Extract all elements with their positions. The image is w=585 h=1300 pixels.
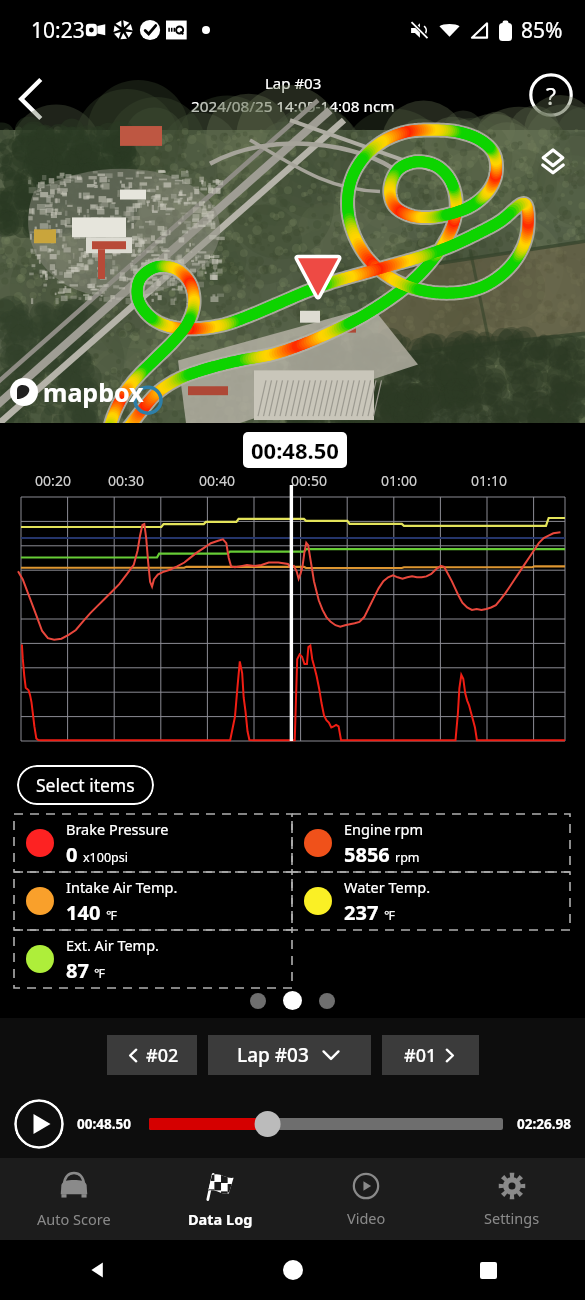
staticText: 237 bbox=[344, 899, 379, 926]
staticText: Water Temp. bbox=[344, 877, 431, 897]
button[interactable]: Settings bbox=[439, 1158, 585, 1240]
staticText: 5856 bbox=[344, 841, 390, 868]
button[interactable]: Help bbox=[525, 69, 577, 121]
staticText: Ext. Air Temp. bbox=[66, 935, 159, 955]
staticText: ℉ bbox=[106, 907, 117, 924]
staticText: 00:48.50 bbox=[251, 435, 339, 465]
staticText: 10:23 bbox=[31, 16, 85, 45]
button[interactable]: Ext. Air Temp. bbox=[14, 930, 292, 988]
staticText: 00:48.50 bbox=[77, 1115, 131, 1133]
button[interactable]: Data Log bbox=[147, 1158, 293, 1240]
button[interactable]: Home bbox=[273, 1250, 313, 1290]
button[interactable]: Select items bbox=[17, 765, 154, 805]
button[interactable]: Play bbox=[14, 1099, 64, 1149]
button[interactable]: #01 bbox=[382, 1035, 479, 1075]
staticText: Brake Pressure bbox=[66, 819, 169, 839]
button[interactable]: Back bbox=[4, 69, 56, 121]
staticText: 2024/08/25 14:05-14:08 ncm bbox=[191, 96, 395, 117]
staticText: 00:50 bbox=[282, 471, 336, 490]
button[interactable]: Lap #03 bbox=[208, 1035, 371, 1075]
staticText: 02:26.98 bbox=[517, 1115, 571, 1133]
button[interactable]: Brake Pressure bbox=[14, 814, 292, 872]
staticText: 85% bbox=[521, 16, 563, 45]
button[interactable]: Engine rpm bbox=[292, 814, 570, 872]
staticText: Video bbox=[347, 1208, 386, 1228]
staticText: Lap #03 bbox=[237, 1042, 309, 1068]
staticText: Intake Air Temp. bbox=[66, 877, 178, 897]
staticText: 01:00 bbox=[372, 471, 426, 490]
staticText: 01:10 bbox=[462, 471, 516, 490]
staticText: x100psi bbox=[83, 849, 128, 866]
staticText: ℉ bbox=[94, 965, 105, 982]
button[interactable]: Auto Score bbox=[0, 1158, 147, 1240]
staticText: ? bbox=[546, 80, 556, 111]
staticText: Auto Score bbox=[37, 1209, 111, 1229]
staticText: #02 bbox=[146, 1043, 179, 1068]
staticText: 140 bbox=[66, 899, 101, 926]
staticText: 00:40 bbox=[190, 471, 244, 490]
staticText: Settings bbox=[484, 1208, 540, 1228]
staticText: 00:30 bbox=[99, 471, 153, 490]
button[interactable]: Map layers bbox=[533, 142, 573, 182]
staticText: Data Log bbox=[188, 1209, 253, 1229]
staticText: Select items bbox=[36, 773, 135, 797]
button[interactable]: Recents bbox=[468, 1250, 508, 1290]
button[interactable]: Water Temp. bbox=[292, 872, 570, 930]
staticText: 87 bbox=[66, 957, 89, 984]
staticText: Engine rpm bbox=[344, 819, 424, 839]
button[interactable]: #02 bbox=[107, 1035, 197, 1075]
button[interactable]: Back bbox=[78, 1250, 118, 1290]
staticText: 0 bbox=[66, 841, 78, 868]
staticText: ℉ bbox=[384, 907, 395, 924]
staticText: 00:20 bbox=[26, 471, 80, 490]
staticText: Lap #03 bbox=[265, 73, 322, 93]
staticText: rpm bbox=[395, 849, 420, 866]
button[interactable]: Intake Air Temp. bbox=[14, 872, 292, 930]
button[interactable]: Video bbox=[293, 1158, 439, 1240]
staticText: mapbox bbox=[43, 375, 144, 409]
staticText: #01 bbox=[404, 1043, 437, 1068]
